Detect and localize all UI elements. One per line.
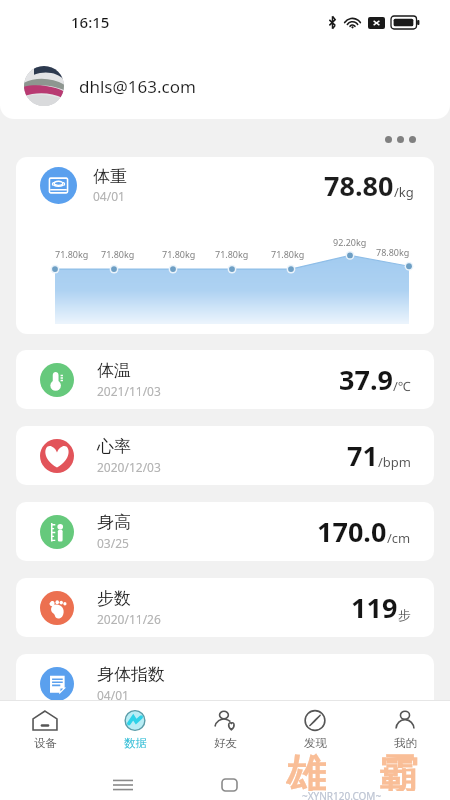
- staticText: 好友: [214, 736, 237, 750]
- staticText: 04/01: [93, 188, 125, 204]
- button[interactable]: 步数: [16, 578, 434, 637]
- staticText: 78.80: [324, 167, 394, 204]
- button[interactable]: 体重: [16, 157, 434, 334]
- staticText: 03/25: [97, 535, 129, 551]
- button[interactable]: Home: [222, 779, 237, 791]
- staticText: 步数: [97, 588, 131, 609]
- staticText: 71.80kg: [162, 248, 196, 260]
- staticText: 78.80kg: [376, 246, 410, 258]
- staticText: /cm: [387, 529, 411, 547]
- staticText: 体重: [93, 166, 127, 187]
- button[interactable]: 体温: [16, 350, 434, 409]
- button[interactable]: 心率: [16, 426, 434, 485]
- button[interactable]: 设备: [0, 700, 90, 758]
- button[interactable]: 我的: [360, 700, 450, 758]
- staticText: 2020/11/26: [97, 611, 161, 627]
- staticText: 步: [398, 607, 411, 623]
- button[interactable]: 身体指数: [16, 654, 434, 713]
- staticText: 数据: [124, 736, 147, 750]
- staticText: 雄: [286, 749, 326, 791]
- staticText: 170.0: [317, 513, 387, 550]
- staticText: 37.9: [339, 361, 393, 398]
- button[interactable]: 身高: [16, 502, 434, 561]
- staticText: 设备: [34, 736, 57, 750]
- staticText: 71: [347, 437, 378, 474]
- staticText: /℃: [393, 377, 411, 395]
- staticText: dhls@163.com: [79, 75, 196, 98]
- staticText: ~XYNR120.COM~: [302, 789, 382, 800]
- staticText: 71.80kg: [271, 248, 305, 260]
- staticText: 92.20kg: [333, 236, 367, 248]
- staticText: 71.80kg: [101, 248, 135, 260]
- button[interactable]: Recents: [113, 779, 133, 791]
- staticText: 心率: [97, 436, 131, 457]
- staticText: 71.80kg: [215, 248, 249, 260]
- staticText: 发现: [304, 736, 327, 750]
- staticText: 71.80kg: [55, 248, 89, 260]
- staticText: 身体指数: [97, 664, 165, 685]
- button[interactable]: 发现: [270, 700, 360, 758]
- staticText: 16:15: [71, 12, 110, 32]
- staticText: 119: [351, 589, 398, 626]
- staticText: 我的: [394, 736, 417, 750]
- staticText: 04/01: [97, 687, 129, 703]
- button[interactable]: 数据: [90, 700, 180, 758]
- button[interactable]: More options: [385, 136, 416, 143]
- staticText: 2021/11/03: [97, 383, 161, 399]
- staticText: 霸: [378, 749, 418, 791]
- staticText: /kg: [394, 183, 414, 201]
- button[interactable]: 好友: [180, 700, 270, 758]
- staticText: /bpm: [378, 453, 411, 471]
- staticText: 身高: [97, 512, 131, 533]
- staticText: 2020/12/03: [97, 459, 161, 475]
- staticText: 体温: [97, 360, 131, 381]
